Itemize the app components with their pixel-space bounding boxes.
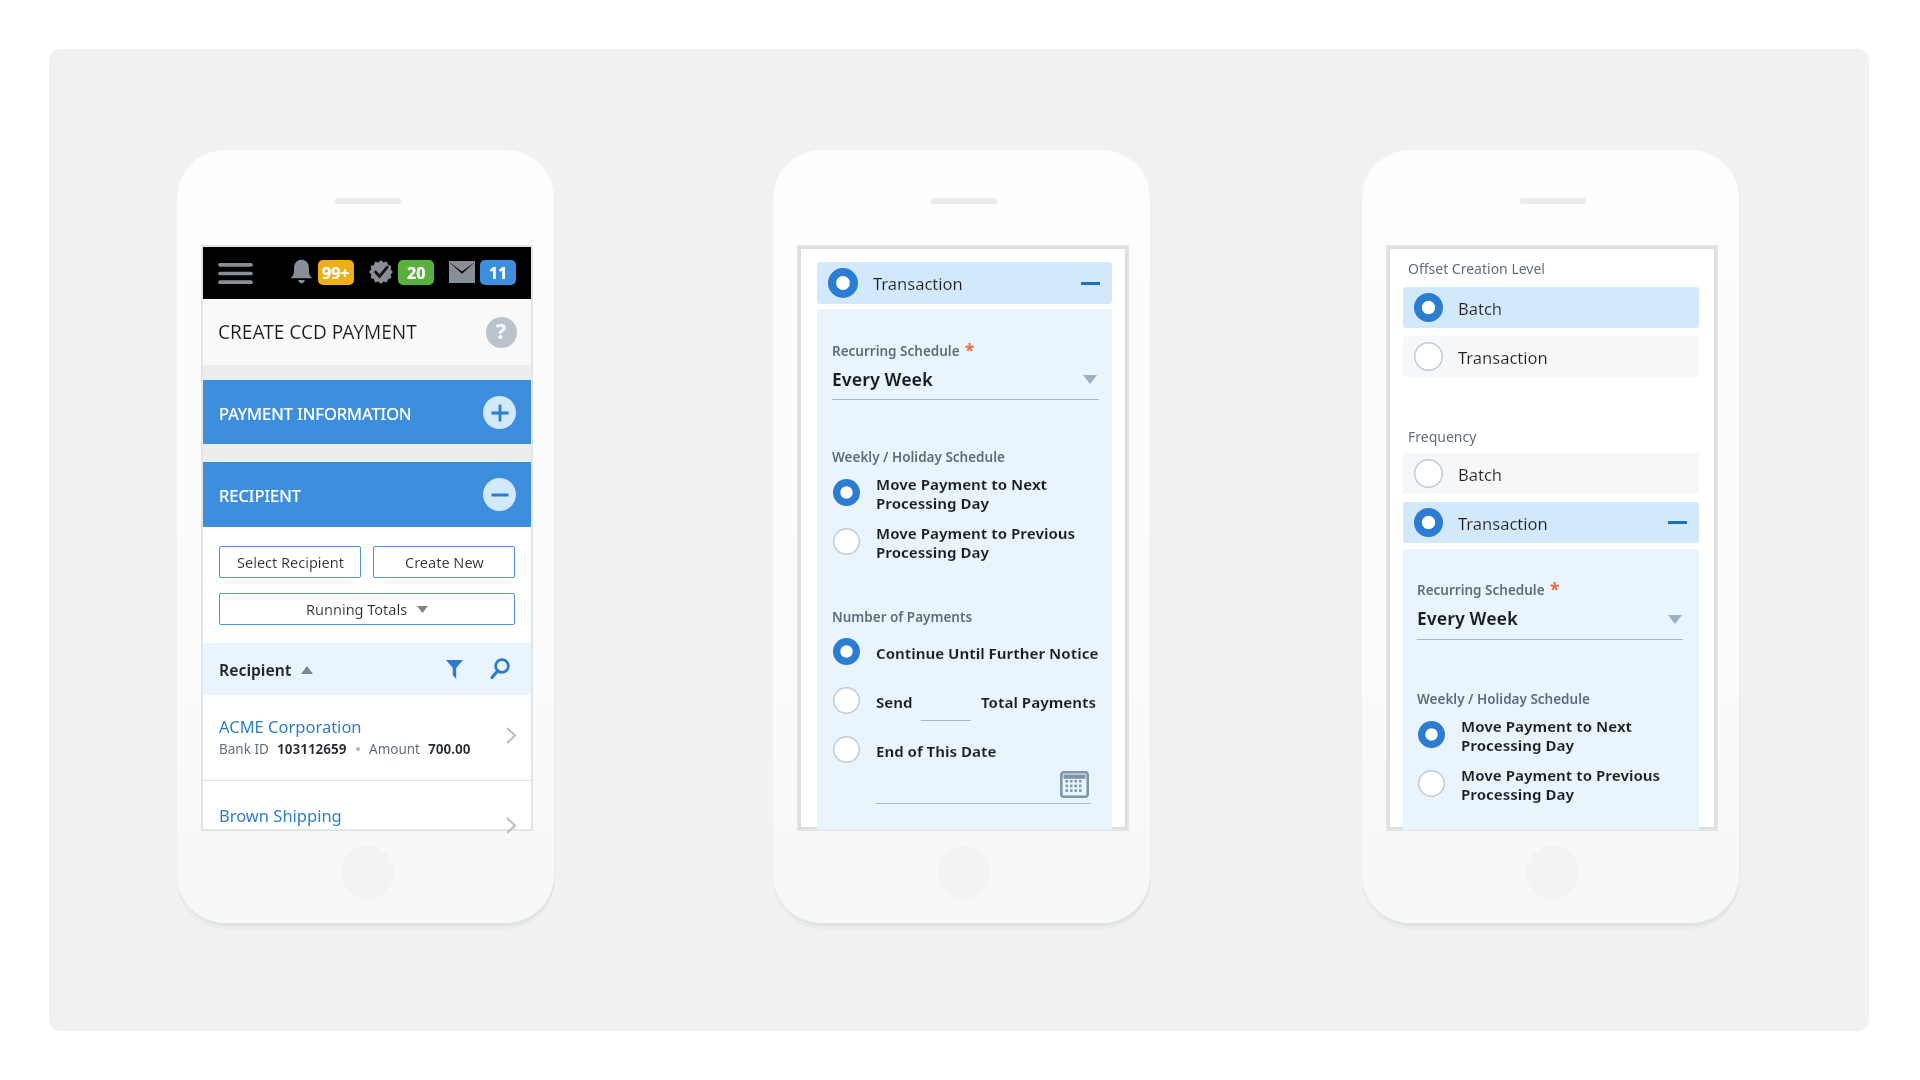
button[interactable]: Batch: [1403, 287, 1699, 328]
button[interactable]: Filter: [439, 654, 469, 684]
button[interactable]: Menu: [213, 256, 257, 290]
staticText: Transaction: [1458, 346, 1548, 368]
button[interactable]: Recipient: [203, 643, 531, 695]
staticText: Processing Day: [1461, 735, 1574, 755]
staticText: Brown Shipping: [219, 804, 342, 826]
button[interactable]: Messages: [449, 262, 475, 283]
staticText: ?: [496, 317, 507, 346]
staticText: Total Payments: [981, 692, 1097, 712]
staticText: Processing Day: [876, 542, 989, 562]
button[interactable]: RECIPIENT: [203, 462, 531, 527]
button[interactable]: Running Totals: [219, 593, 515, 625]
button[interactable]: Transaction: [1403, 502, 1699, 543]
staticText: Send: [876, 692, 913, 712]
staticText: ACME Corporation: [219, 715, 362, 737]
button[interactable]: Approvals: [369, 260, 393, 284]
staticText: Bank ID: [219, 740, 269, 758]
staticText: Weekly / Holiday Schedule: [832, 448, 1005, 466]
staticText: Move Payment to Next: [1461, 716, 1633, 736]
staticText: Select Recipient: [237, 552, 344, 572]
staticText: Processing Day: [1461, 784, 1574, 804]
button[interactable]: Create New: [373, 546, 515, 578]
staticText: *: [965, 339, 975, 362]
staticText: 99+: [322, 262, 350, 284]
button[interactable]: 11: [480, 260, 516, 285]
button[interactable]: Search: [485, 654, 515, 684]
staticText: Continue Until Further Notice: [876, 643, 1099, 663]
staticText: Frequency: [1408, 427, 1477, 446]
staticText: RECIPIENT: [219, 484, 301, 506]
staticText: Number of Payments: [832, 608, 973, 626]
button[interactable]: Help: [486, 317, 517, 348]
staticText: Batch: [1458, 463, 1503, 485]
button[interactable]: Select Recipient: [219, 546, 361, 578]
staticText: Move Payment to Previous: [876, 523, 1076, 543]
button[interactable]: Batch: [1403, 453, 1699, 494]
staticText: 11: [489, 262, 508, 284]
staticText: Processing Day: [876, 493, 989, 513]
staticText: Create New: [405, 552, 484, 572]
staticText: 700.00: [428, 740, 471, 758]
staticText: Recipient: [219, 659, 292, 680]
staticText: PAYMENT INFORMATION: [219, 402, 412, 424]
staticText: Transaction: [873, 272, 963, 294]
staticText: Running Totals: [306, 599, 408, 619]
staticText: *: [1550, 578, 1560, 601]
button[interactable]: Brown Shipping: [203, 781, 531, 829]
staticText: 20: [407, 262, 426, 284]
staticText: Every Week: [832, 367, 933, 391]
staticText: Batch: [1458, 297, 1503, 319]
staticText: Recurring Schedule: [832, 342, 960, 360]
staticText: Every Week: [1417, 606, 1518, 630]
button[interactable]: 20: [398, 260, 434, 285]
staticText: 103112659: [277, 740, 347, 758]
button[interactable]: 99+: [318, 260, 354, 285]
button[interactable]: Transaction: [1403, 336, 1699, 377]
staticText: Move Payment to Previous: [1461, 765, 1661, 785]
button[interactable]: Notifications: [289, 259, 314, 285]
button[interactable]: PAYMENT INFORMATION: [203, 380, 531, 445]
staticText: Transaction: [1458, 512, 1548, 534]
button[interactable]: Pick date: [1060, 771, 1089, 798]
staticText: Offset Creation Level: [1408, 259, 1545, 278]
staticText: Move Payment to Next: [876, 474, 1048, 494]
staticText: Amount: [369, 740, 420, 758]
staticText: Weekly / Holiday Schedule: [1417, 690, 1590, 708]
staticText: CREATE CCD PAYMENT: [218, 319, 417, 345]
staticText: End of This Date: [876, 741, 997, 761]
staticText: Recurring Schedule: [1417, 581, 1545, 599]
button[interactable]: Transaction: [817, 262, 1112, 304]
button[interactable]: ACME Corporation: [203, 695, 531, 780]
